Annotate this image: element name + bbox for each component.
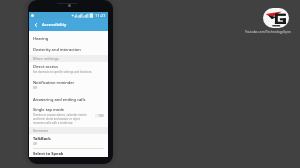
button[interactable]: Direct access [29, 63, 108, 74]
button[interactable]: Select to Speak [29, 149, 108, 158]
staticText: Dexterity and interaction [33, 47, 81, 52]
button[interactable]: TalkBack [29, 135, 108, 146]
staticText: Answering and ending calls [33, 97, 86, 102]
staticText: 11:21 [95, 13, 106, 19]
button[interactable]: Back [29, 19, 108, 31]
other: Technology Gyan logo [263, 8, 289, 28]
staticText: Direct access [33, 64, 58, 69]
staticText: Single tap mode [33, 107, 65, 112]
staticText: Select to Speak [33, 151, 64, 156]
staticText: Dismiss or snooze alarms, calendar event… [33, 113, 87, 124]
button[interactable]: Notification reminder [29, 79, 108, 90]
staticText: More settings [33, 56, 59, 61]
button[interactable]: Single tap mode toggle [95, 113, 104, 118]
button[interactable]: Single tap mode [29, 107, 108, 124]
staticText: TalkBack [33, 136, 51, 141]
other: Back [33, 22, 39, 28]
staticText: Services [33, 128, 49, 133]
button[interactable]: Dexterity and interaction [29, 45, 108, 54]
staticText: Youtube.com/TechnologyGyan [245, 30, 291, 34]
staticText: Hearing [33, 36, 49, 41]
staticText: Notification reminder [33, 80, 75, 85]
staticText: Accessibility [42, 22, 67, 28]
staticText: Off [33, 142, 37, 146]
button[interactable]: Hearing [29, 34, 108, 43]
button[interactable]: Answering and ending calls [29, 95, 108, 104]
staticText: Off [33, 86, 37, 90]
staticText: Set shortcuts to specific settings and f… [33, 70, 92, 74]
